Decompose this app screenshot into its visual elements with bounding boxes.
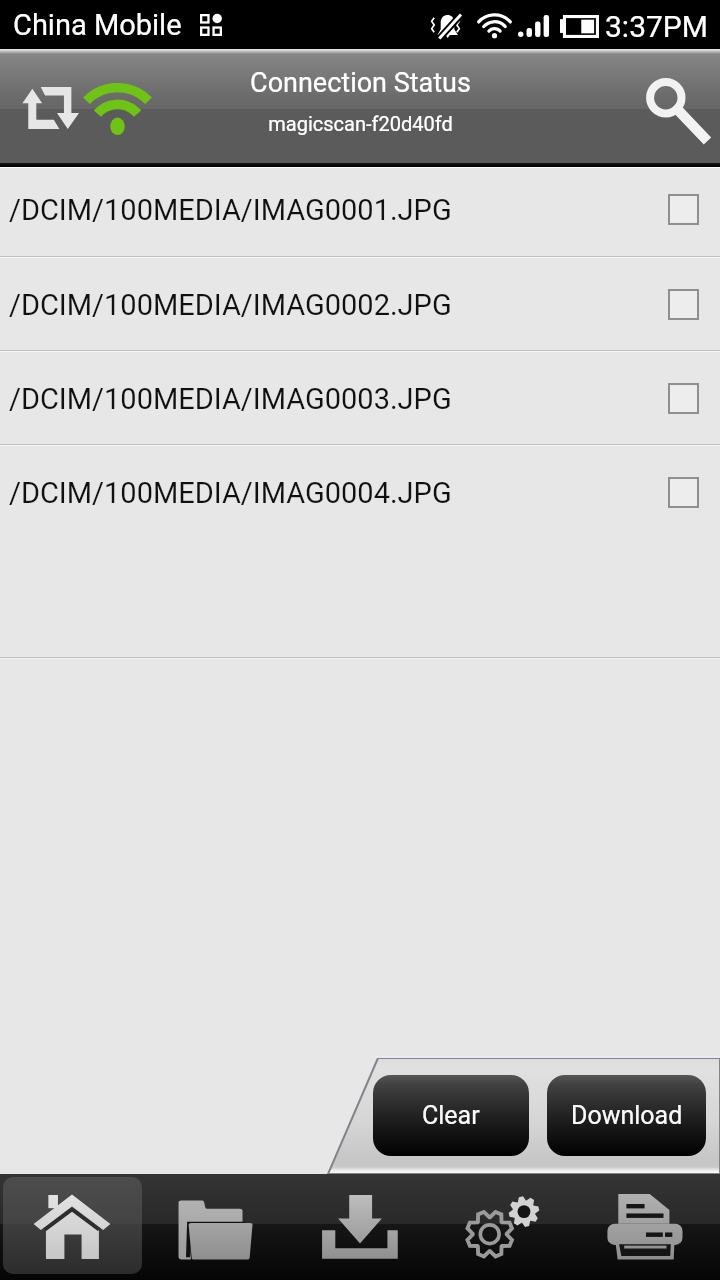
staticText: /DCIM/100MEDIA/IMAG0003.JPG xyxy=(9,382,452,416)
staticText: Clear xyxy=(422,1101,480,1130)
staticText: /DCIM/100MEDIA/IMAG0004.JPG xyxy=(9,476,452,510)
staticText: /DCIM/100MEDIA/IMAG0001.JPG xyxy=(9,193,452,227)
button[interactable]: Settings xyxy=(432,1174,576,1280)
button[interactable]: Clear xyxy=(373,1075,529,1156)
button[interactable]: Print xyxy=(576,1174,720,1280)
button[interactable]: Select /DCIM/100MEDIA/IMAG0002.JPG xyxy=(655,258,711,350)
button[interactable]: /DCIM/100MEDIA/IMAG0003.JPG xyxy=(0,352,720,444)
staticText: magicscan-f20d40fd xyxy=(268,112,453,135)
button[interactable]: Refresh xyxy=(11,65,89,149)
button[interactable]: /DCIM/100MEDIA/IMAG0004.JPG xyxy=(0,446,720,538)
button[interactable]: Wi-Fi connected xyxy=(78,65,160,149)
staticText: Download xyxy=(571,1101,683,1130)
button[interactable]: Files xyxy=(144,1174,288,1280)
staticText: /DCIM/100MEDIA/IMAG0002.JPG xyxy=(9,288,452,322)
button[interactable]: /DCIM/100MEDIA/IMAG0001.JPG xyxy=(0,168,720,256)
staticText: 3:37PM xyxy=(605,9,708,44)
button[interactable]: Download xyxy=(547,1075,706,1156)
staticText: Connection Status xyxy=(250,67,471,99)
button[interactable]: Home xyxy=(0,1174,144,1280)
staticText: China Mobile xyxy=(13,8,182,42)
button[interactable]: Search xyxy=(624,56,720,156)
button[interactable]: Select /DCIM/100MEDIA/IMAG0001.JPG xyxy=(655,168,711,256)
button[interactable]: Select /DCIM/100MEDIA/IMAG0004.JPG xyxy=(655,446,711,538)
button[interactable]: Downloads xyxy=(288,1174,432,1280)
button[interactable]: /DCIM/100MEDIA/IMAG0002.JPG xyxy=(0,258,720,350)
button[interactable]: Select /DCIM/100MEDIA/IMAG0003.JPG xyxy=(655,352,711,444)
